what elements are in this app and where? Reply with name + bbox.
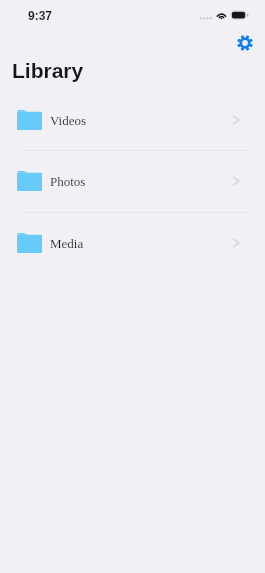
staticText: Library xyxy=(12,59,84,82)
button[interactable]: Photos xyxy=(0,150,265,211)
staticText: Media xyxy=(50,236,84,250)
staticText: 9:37 xyxy=(28,9,53,22)
button[interactable]: Settings xyxy=(232,30,257,55)
button[interactable]: Videos xyxy=(0,89,265,150)
staticText: Photos xyxy=(50,174,86,188)
staticText: Videos xyxy=(50,113,87,127)
button[interactable]: Media xyxy=(0,212,265,273)
